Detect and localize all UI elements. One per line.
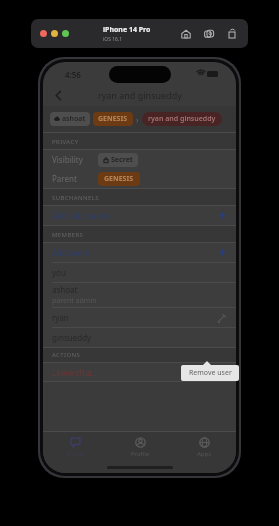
button[interactable]: Inbox (43, 432, 108, 462)
button[interactable]: Leave chat... (52, 363, 236, 381)
staticText: Remove user (189, 368, 232, 378)
staticText: SUBCHANNELS (52, 194, 99, 202)
staticText: iOS 16.1 (103, 36, 123, 43)
button[interactable]: Parent (52, 169, 236, 188)
staticText: Inbox (67, 450, 84, 458)
button[interactable]: ryan and ginsueddy (148, 114, 216, 124)
staticText: MEMBERS (52, 231, 84, 239)
staticText: ryan and ginsueddy (148, 114, 216, 124)
staticText: Parent (52, 173, 77, 184)
staticText: iPhone 14 Pro (103, 25, 151, 35)
staticText: Add subchannel (52, 210, 113, 221)
staticText: ashoat (52, 284, 78, 295)
button[interactable] (40, 30, 47, 37)
button[interactable]: GENESIS (98, 114, 128, 124)
button[interactable]: Screenshot (202, 27, 216, 41)
button[interactable]: Rotate (225, 27, 239, 41)
staticText: Visibility (52, 154, 83, 165)
staticText: you (52, 267, 66, 278)
staticText: GENESIS (98, 114, 128, 124)
button[interactable]: Back (47, 84, 69, 106)
button[interactable]: Remove user (181, 365, 239, 381)
button[interactable]: Edit member (215, 312, 227, 324)
staticText: ryan (52, 312, 69, 323)
button[interactable]: Visibility (52, 150, 236, 169)
staticText: ryan and ginsueddy (98, 89, 182, 101)
staticText: ashoat (62, 114, 86, 124)
button[interactable]: Home (179, 27, 193, 41)
button[interactable]: Add subchannel (52, 206, 227, 225)
staticText: parent admin (52, 296, 97, 306)
button[interactable] (62, 30, 69, 37)
staticText: Apps (197, 450, 212, 458)
staticText: PRIVACY (52, 138, 79, 146)
staticText: GENESIS (104, 174, 134, 184)
staticText: Leave chat... (52, 367, 99, 378)
button[interactable]: Apps (172, 432, 236, 462)
staticText: ACTIONS (52, 351, 81, 359)
button[interactable]: ashoat (54, 114, 86, 124)
button[interactable]: Profile (108, 432, 172, 462)
staticText: Profile (131, 450, 150, 458)
button[interactable] (51, 30, 58, 37)
button[interactable]: Add users (52, 243, 227, 262)
staticText: › (136, 114, 139, 125)
staticText: 4:56 (65, 69, 81, 80)
staticText: Secret (111, 155, 133, 165)
staticText: ginsueddy (52, 332, 92, 343)
staticText: Add users (52, 247, 90, 258)
